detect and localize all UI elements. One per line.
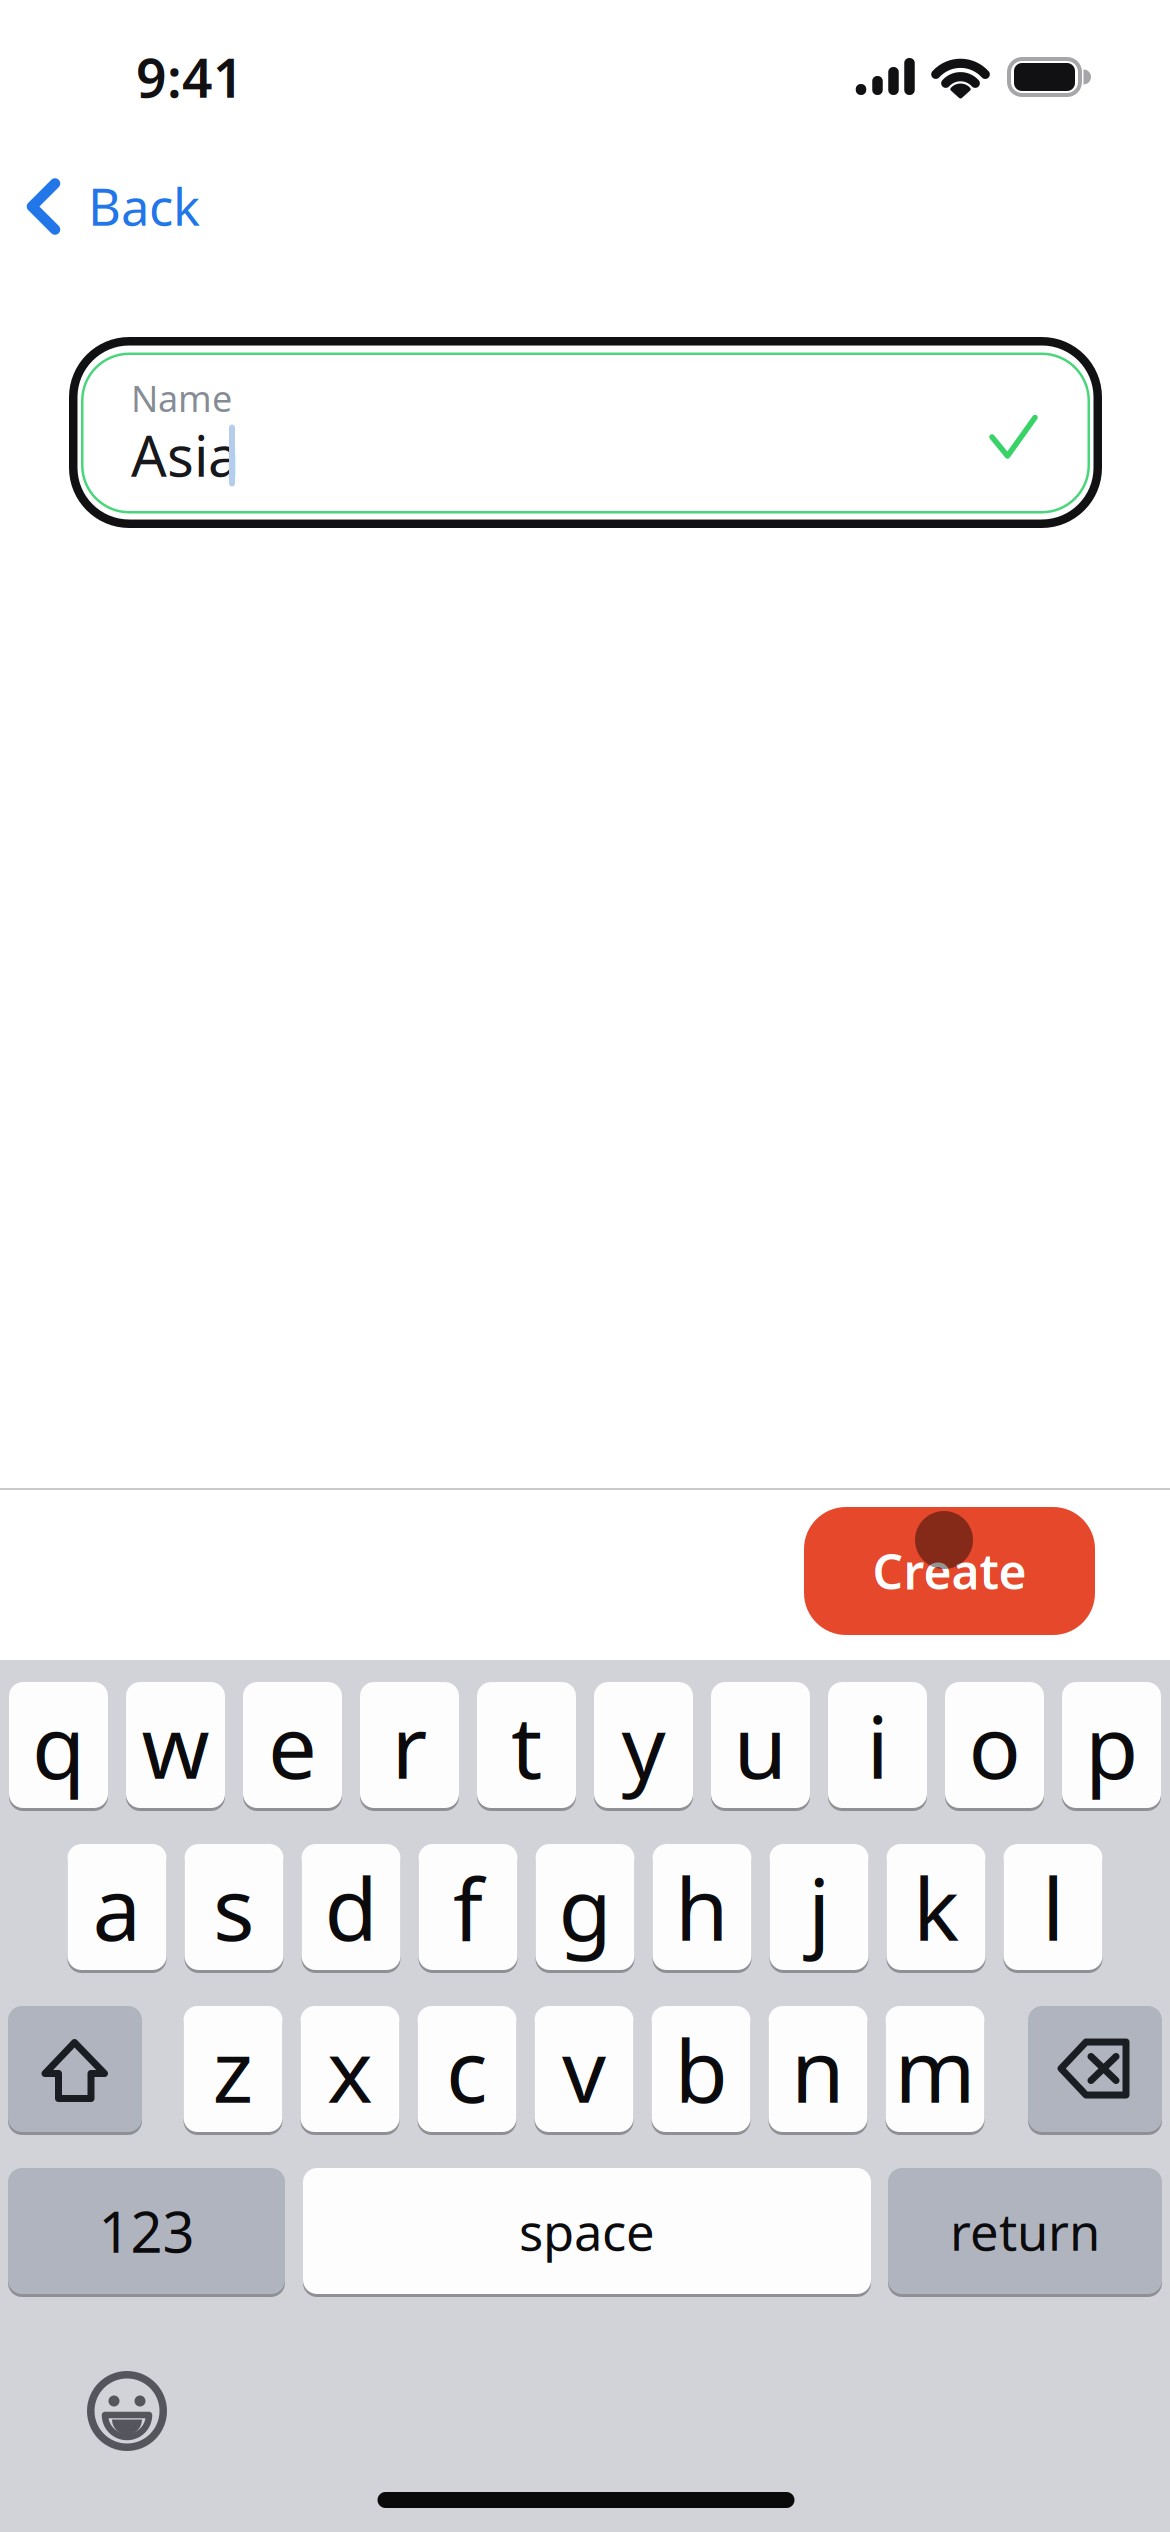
button[interactable]: u — [711, 1680, 810, 1809]
button[interactable]: Create — [804, 1507, 1095, 1635]
button[interactable]: s — [184, 1842, 283, 1971]
button[interactable]: p — [1062, 1680, 1161, 1809]
staticText: Name — [131, 374, 232, 422]
staticText: i — [866, 1687, 888, 1803]
staticText: j — [808, 1849, 830, 1965]
staticText: 9:41 — [136, 42, 244, 112]
staticText: 123 — [98, 2194, 194, 2268]
staticText: u — [733, 1687, 787, 1803]
button[interactable]: y — [594, 1680, 693, 1809]
button[interactable]: Emoji — [87, 2371, 167, 2451]
button[interactable]: k — [886, 1842, 985, 1971]
staticText: z — [212, 2011, 253, 2127]
button[interactable]: t — [477, 1680, 576, 1809]
button[interactable]: w — [126, 1680, 225, 1809]
staticText: v — [562, 2011, 606, 2127]
staticText: t — [511, 1687, 542, 1803]
button[interactable]: i — [828, 1680, 927, 1809]
button[interactable]: c — [417, 2004, 516, 2133]
staticText: o — [968, 1687, 1020, 1803]
button[interactable]: g — [535, 1842, 634, 1971]
staticText: p — [1085, 1687, 1138, 1803]
button[interactable]: n — [768, 2004, 867, 2133]
staticText: x — [327, 2011, 373, 2127]
button[interactable]: return — [888, 2166, 1162, 2295]
button[interactable]: f — [418, 1842, 517, 1971]
staticText: y — [621, 1687, 665, 1803]
staticText: m — [894, 2011, 975, 2127]
button[interactable]: j — [769, 1842, 868, 1971]
button[interactable]: Back — [0, 152, 270, 262]
staticText: l — [1042, 1849, 1064, 1965]
button[interactable]: m — [885, 2004, 984, 2133]
button[interactable]: b — [651, 2004, 750, 2133]
button[interactable]: r — [360, 1680, 459, 1809]
staticText: space — [519, 2197, 655, 2265]
button[interactable]: Shift — [8, 2004, 142, 2133]
staticText: k — [913, 1849, 959, 1965]
button[interactable]: o — [945, 1680, 1044, 1809]
staticText: e — [268, 1687, 317, 1803]
button[interactable]: h — [652, 1842, 751, 1971]
button[interactable]: Delete — [1028, 2004, 1162, 2133]
staticText: q — [32, 1687, 85, 1803]
staticText: b — [674, 2011, 727, 2127]
staticText: a — [92, 1849, 141, 1965]
button[interactable]: e — [243, 1680, 342, 1809]
button[interactable]: 123 — [8, 2166, 285, 2295]
staticText: h — [675, 1849, 729, 1965]
staticText: Create — [872, 1539, 1026, 1603]
staticText: n — [791, 2011, 845, 2127]
staticText: d — [324, 1849, 377, 1965]
button[interactable]: d — [301, 1842, 400, 1971]
staticText: g — [558, 1849, 611, 1965]
staticText: r — [391, 1687, 427, 1803]
button[interactable]: v — [534, 2004, 633, 2133]
staticText: return — [950, 2197, 1100, 2265]
button[interactable]: a — [67, 1842, 166, 1971]
staticText: Asia — [131, 418, 239, 492]
button[interactable]: space — [303, 2166, 871, 2295]
staticText: f — [453, 1849, 483, 1965]
staticText: c — [446, 2011, 488, 2127]
button[interactable]: q — [9, 1680, 108, 1809]
button[interactable]: Name — [69, 337, 1102, 528]
staticText: Back — [88, 172, 200, 240]
button[interactable]: z — [183, 2004, 282, 2133]
staticText: s — [213, 1849, 255, 1965]
button[interactable]: l — [1003, 1842, 1102, 1971]
button[interactable]: x — [300, 2004, 399, 2133]
staticText: w — [141, 1687, 209, 1803]
